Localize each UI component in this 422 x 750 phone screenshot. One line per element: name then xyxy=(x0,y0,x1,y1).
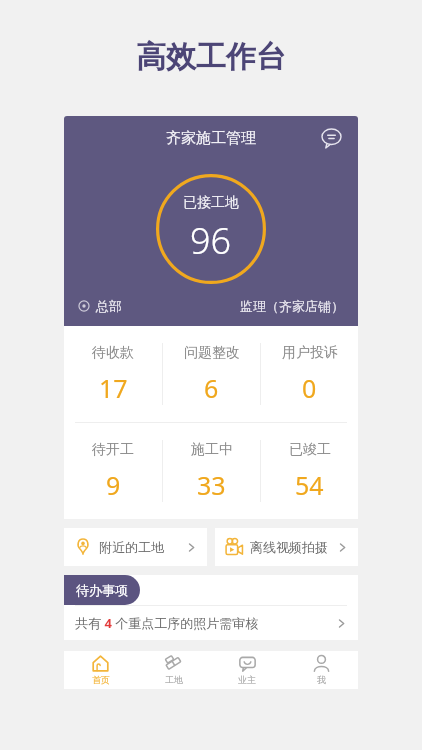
button[interactable]: 问题整改 xyxy=(163,326,260,422)
button[interactable]: 首页 xyxy=(64,651,137,689)
staticText: 施工中 xyxy=(191,441,233,459)
button[interactable]: Messages xyxy=(316,123,346,153)
staticText: 9 xyxy=(106,468,121,502)
button[interactable]: 施工中 xyxy=(163,423,260,519)
staticText: 已接工地 xyxy=(183,194,239,212)
staticText: 待收款 xyxy=(92,344,134,362)
staticText: 用户投诉 xyxy=(282,344,338,362)
staticText: 附近的工地 xyxy=(99,539,164,555)
staticText: 首页 xyxy=(92,674,110,685)
button[interactable]: 待开工 xyxy=(64,423,162,519)
staticText: 33 xyxy=(197,468,226,502)
staticText: 总部 xyxy=(96,298,122,314)
staticText: 高效工作台 xyxy=(0,38,422,76)
staticText: 问题整改 xyxy=(184,344,240,362)
staticText: 监理（齐家店铺） xyxy=(240,298,344,314)
staticText: 待办事项 xyxy=(76,582,128,598)
staticText: 齐家施工管理 xyxy=(166,129,256,148)
staticText: 离线视频拍摄 xyxy=(250,539,328,555)
button[interactable]: 离线视频拍摄 xyxy=(215,528,358,566)
staticText: 6 xyxy=(204,371,219,405)
staticText: 已竣工 xyxy=(289,441,331,459)
staticText: 工地 xyxy=(165,674,183,685)
staticText: 待开工 xyxy=(92,441,134,459)
staticText: 96 xyxy=(190,216,232,265)
staticText: 0 xyxy=(302,371,317,405)
button[interactable]: 用户投诉 xyxy=(261,326,358,422)
button[interactable]: 工地 xyxy=(137,651,210,689)
button[interactable]: 待收款 xyxy=(64,326,162,422)
button[interactable]: 已竣工 xyxy=(261,423,358,519)
staticText: 共有 4 个重点工序的照片需审核 xyxy=(75,614,259,632)
button[interactable]: 我 xyxy=(284,651,358,689)
button[interactable]: 共有 4 个重点工序的照片需审核 xyxy=(64,606,358,640)
staticText: 业主 xyxy=(238,674,256,685)
staticText: 54 xyxy=(295,468,324,502)
staticText: 我 xyxy=(317,674,326,685)
staticText: 17 xyxy=(99,371,128,405)
button[interactable]: 业主 xyxy=(210,651,284,689)
button[interactable]: 附近的工地 xyxy=(64,528,207,566)
